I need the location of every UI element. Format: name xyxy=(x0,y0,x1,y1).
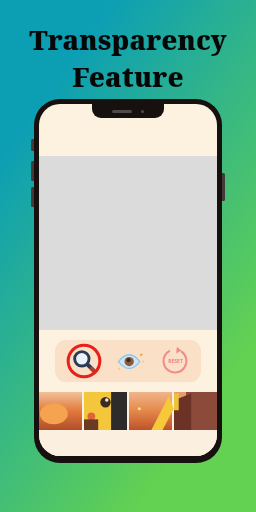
button[interactable]: Zoom xyxy=(64,341,104,381)
staticText: Transparency xyxy=(29,21,227,58)
staticText: Feature xyxy=(72,58,184,95)
button[interactable]: Transparency xyxy=(112,343,148,379)
staticText: RESET xyxy=(168,358,183,365)
button[interactable]: Image 3 xyxy=(129,392,172,430)
button[interactable]: Image 1 xyxy=(39,392,82,430)
button[interactable]: Image 4 xyxy=(174,392,217,430)
button[interactable]: Image 2 xyxy=(84,392,127,430)
button[interactable]: Reset xyxy=(157,343,193,379)
